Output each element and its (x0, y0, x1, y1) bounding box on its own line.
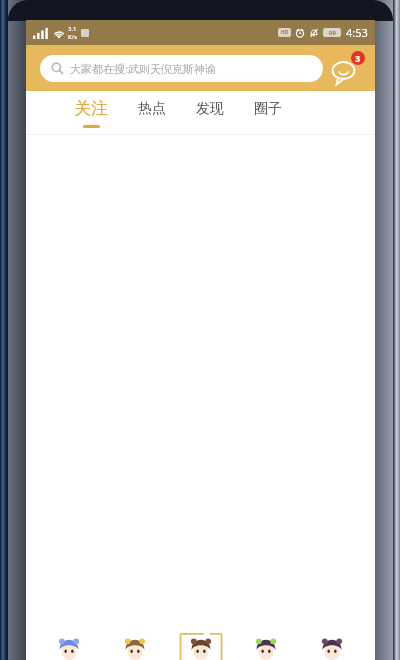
button[interactable]: Character avatar (174, 630, 228, 660)
button[interactable]: 大家都在搜:武则天倪克斯神谕 (40, 55, 323, 82)
staticText: 发现 (196, 100, 224, 118)
staticText: 关注 (74, 98, 108, 119)
button[interactable]: Character avatar (239, 630, 293, 660)
staticText: 3 (355, 52, 361, 64)
button[interactable]: Character avatar (305, 630, 359, 660)
button[interactable]: Character avatar (42, 630, 96, 660)
button[interactable]: Character avatar (108, 630, 162, 660)
button[interactable]: 热点 (136, 97, 168, 130)
button[interactable]: Messages (331, 51, 365, 85)
staticText: 3.1 (68, 25, 77, 33)
staticText: K/s (68, 33, 77, 41)
staticText: 大家都在搜:武则天倪克斯神谕 (70, 61, 216, 76)
staticText: 圈子 (254, 100, 282, 118)
staticText: HD (281, 29, 289, 36)
staticText: 99 (329, 29, 336, 37)
staticText: 4:53 (346, 25, 368, 40)
button[interactable]: 关注 (72, 95, 110, 131)
staticText: 热点 (138, 100, 166, 118)
button[interactable]: 发现 (194, 97, 226, 130)
button[interactable]: 圈子 (252, 97, 284, 130)
